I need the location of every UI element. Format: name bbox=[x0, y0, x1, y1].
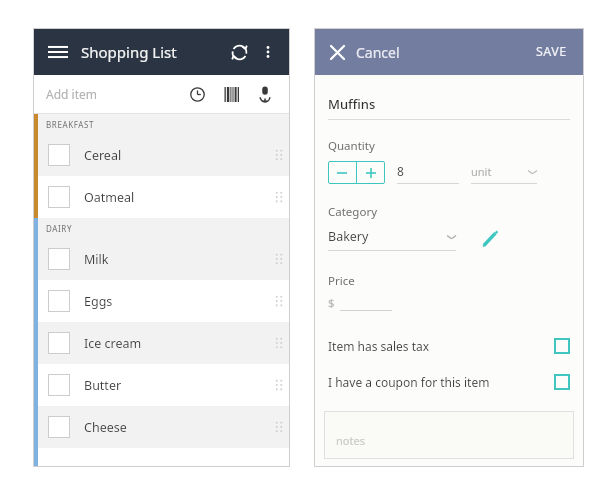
button[interactable]: Check Oatmeal bbox=[48, 186, 70, 208]
button[interactable]: Reorder Eggs bbox=[268, 280, 290, 322]
button[interactable]: Reorder Cheese bbox=[268, 406, 290, 448]
staticText: BREAKFAST bbox=[46, 119, 95, 130]
staticText: Muffins bbox=[328, 95, 376, 113]
button[interactable] bbox=[340, 298, 392, 311]
staticText: Milk bbox=[84, 251, 109, 268]
button[interactable]: Reorder Butter bbox=[268, 364, 290, 406]
button[interactable]: Check Eggs bbox=[48, 290, 70, 312]
staticText: 8 bbox=[397, 163, 404, 179]
staticText: I have a coupon for this item bbox=[328, 374, 490, 390]
staticText: notes bbox=[336, 433, 365, 448]
staticText: Bakery bbox=[328, 228, 369, 245]
button[interactable]: Menu bbox=[45, 39, 71, 65]
staticText: Cheese bbox=[84, 419, 127, 436]
button[interactable]: Reorder Ice cream bbox=[268, 322, 290, 364]
button[interactable]: SAVE bbox=[532, 39, 571, 64]
button[interactable]: notes bbox=[324, 411, 574, 459]
staticText: Eggs bbox=[84, 293, 113, 310]
button[interactable]: Edit category bbox=[478, 227, 502, 251]
staticText: Price bbox=[328, 273, 355, 289]
staticText: Oatmeal bbox=[84, 189, 135, 206]
staticText: Add item bbox=[46, 86, 97, 102]
button[interactable]: 8 bbox=[397, 163, 459, 184]
button[interactable]: Check Milk bbox=[33, 238, 290, 280]
button[interactable]: Check Ice cream bbox=[48, 332, 70, 354]
button[interactable]: Increase quantity bbox=[357, 161, 385, 184]
button[interactable]: Check Butter bbox=[33, 364, 290, 406]
button[interactable]: Bakery bbox=[328, 228, 456, 251]
staticText: DAIRY bbox=[46, 223, 73, 234]
button[interactable]: Check Ice cream bbox=[33, 322, 290, 364]
staticText: Quantity bbox=[328, 138, 375, 154]
button[interactable]: I have a coupon for this item bbox=[328, 369, 570, 395]
button[interactable]: Check Milk bbox=[48, 248, 70, 270]
staticText: Butter bbox=[84, 377, 122, 394]
button[interactable]: Check Cheese bbox=[48, 416, 70, 438]
staticText: Item has sales tax bbox=[328, 338, 430, 354]
button[interactable]: Decrease quantity bbox=[328, 161, 356, 184]
staticText: Category bbox=[328, 204, 378, 220]
button[interactable]: Sync bbox=[226, 39, 252, 65]
button[interactable]: Voice input bbox=[253, 82, 277, 106]
button[interactable]: Check Cheese bbox=[33, 406, 290, 448]
button[interactable]: Reorder Milk bbox=[268, 238, 290, 280]
button[interactable]: Check Oatmeal bbox=[33, 176, 290, 218]
button[interactable]: Reorder Oatmeal bbox=[268, 176, 290, 218]
staticText: Ice cream bbox=[84, 335, 142, 352]
button[interactable]: More options bbox=[258, 42, 278, 62]
button[interactable]: Check Eggs bbox=[33, 280, 290, 322]
staticText: $ bbox=[328, 295, 335, 311]
button[interactable]: Check Cereal bbox=[33, 134, 290, 176]
staticText: Cereal bbox=[84, 147, 122, 164]
staticText: unit bbox=[471, 164, 492, 179]
button[interactable]: Reorder Cereal bbox=[268, 134, 290, 176]
button[interactable]: unit bbox=[471, 164, 537, 184]
staticText: Shopping List bbox=[81, 42, 177, 62]
button[interactable]: Check Cereal bbox=[48, 144, 70, 166]
staticText: SAVE bbox=[536, 43, 567, 60]
button[interactable]: Recent items bbox=[185, 82, 209, 106]
button[interactable]: Scan barcode bbox=[219, 82, 243, 106]
staticText: Cancel bbox=[356, 43, 400, 62]
button[interactable]: Cancel bbox=[327, 42, 400, 62]
button[interactable]: Item has sales tax bbox=[328, 333, 570, 359]
button[interactable]: Add item bbox=[33, 75, 290, 113]
button[interactable]: Check Butter bbox=[48, 374, 70, 396]
